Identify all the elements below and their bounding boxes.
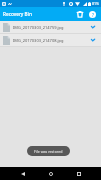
button[interactable]: Select file	[88, 22, 98, 32]
button[interactable]: Delete all	[74, 8, 86, 20]
button[interactable]: Select file	[88, 35, 98, 45]
button[interactable]: IMG_20170303_214708.jpg	[0, 34, 101, 46]
staticText: Recovery Bin	[3, 11, 32, 17]
button[interactable]: Back	[15, 167, 30, 180]
button[interactable]: Home	[43, 167, 58, 180]
button[interactable]: Help	[86, 8, 98, 20]
staticText: ?	[92, 12, 94, 18]
button[interactable]: IMG_20170303_214759.jpg	[0, 21, 101, 33]
staticText: File was restored	[34, 149, 63, 154]
staticText: IMG_20170303_214759.jpg	[13, 25, 88, 30]
staticText: IMG_20170303_214708.jpg	[13, 38, 88, 43]
button[interactable]: Recents	[71, 167, 86, 180]
staticText: 81%	[92, 1, 100, 6]
